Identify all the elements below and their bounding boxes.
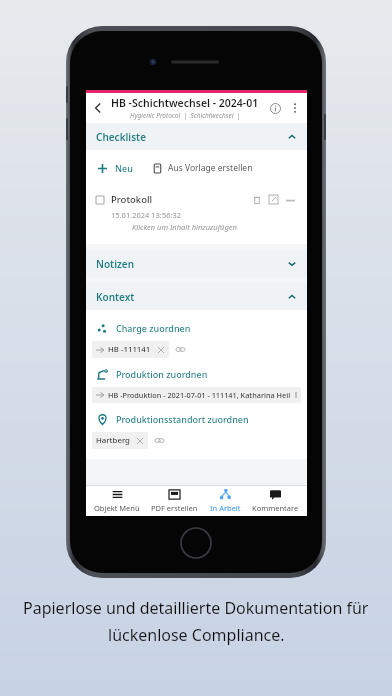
button[interactable]: Verknüpfung [153,434,166,447]
staticText: HB -Produktion - 2021-07-01 - 111141, Ka… [108,390,291,400]
button[interactable]: Neu [95,159,135,177]
button[interactable]: Kommentare [249,488,302,514]
button[interactable]: Mehr Optionen [286,99,304,117]
button[interactable]: Kontext [86,283,307,310]
staticText: lückenlose Compliance. [108,624,285,646]
staticText: In Arbeit [210,503,241,513]
staticText: Produktionsstandort zuordnen [116,413,249,425]
staticText: Charge zuordnen [116,322,191,334]
staticText: Aus Vorlage erstellen [168,162,253,174]
staticText: Checkliste [96,130,147,144]
button[interactable]: Protokoll [91,187,302,239]
button[interactable]: Notizen [86,250,307,277]
button[interactable]: Produktion zuordnen [86,367,307,381]
button[interactable]: Info [264,97,286,119]
button[interactable]: Verknüpfung [174,343,187,356]
button[interactable]: HB -111141 [92,341,169,358]
button[interactable]: Löschen [250,193,263,206]
staticText: Hartberg [96,435,130,446]
staticText: HB -111141 [108,344,151,355]
button[interactable]: Objekt Menü [91,488,143,514]
button[interactable]: Zurück [86,93,110,123]
button[interactable]: Charge zuordnen [86,321,307,335]
staticText: Objekt Menü [94,503,140,513]
staticText: Kommentare [252,503,299,513]
staticText: Klicken um Inhalt hinzuzufügen [132,222,237,232]
button[interactable]: Sortieren [284,193,297,206]
staticText: Neu [115,162,133,174]
staticText: Papierlose und detaillierte Dokumentatio… [23,597,369,619]
staticText: Kontext [96,290,135,304]
staticText: HB -Schichtwechsel - 2024-01 [111,96,259,110]
staticText: Protokoll [111,193,153,206]
button[interactable]: HB -Produktion - 2021-07-01 - 111141, Ka… [92,387,301,403]
staticText: 15.01.2024 13:56:32 [111,210,182,220]
button[interactable]: Hartberg [92,432,148,449]
staticText: Produktion zuordnen [116,368,208,380]
staticText: PDF erstellen [151,503,198,513]
button[interactable]: Checkliste [86,123,307,150]
button[interactable]: Aus Vorlage erstellen [151,159,255,177]
button[interactable]: PDF erstellen [148,488,201,514]
staticText: Hygienic Protocol | Schichtwechsel | [130,111,241,120]
button[interactable]: Produktionsstandort zuordnen [86,412,307,426]
button[interactable]: Öffnen [267,193,280,206]
staticText: Notizen [96,257,135,271]
button[interactable]: In Arbeit [207,488,244,514]
